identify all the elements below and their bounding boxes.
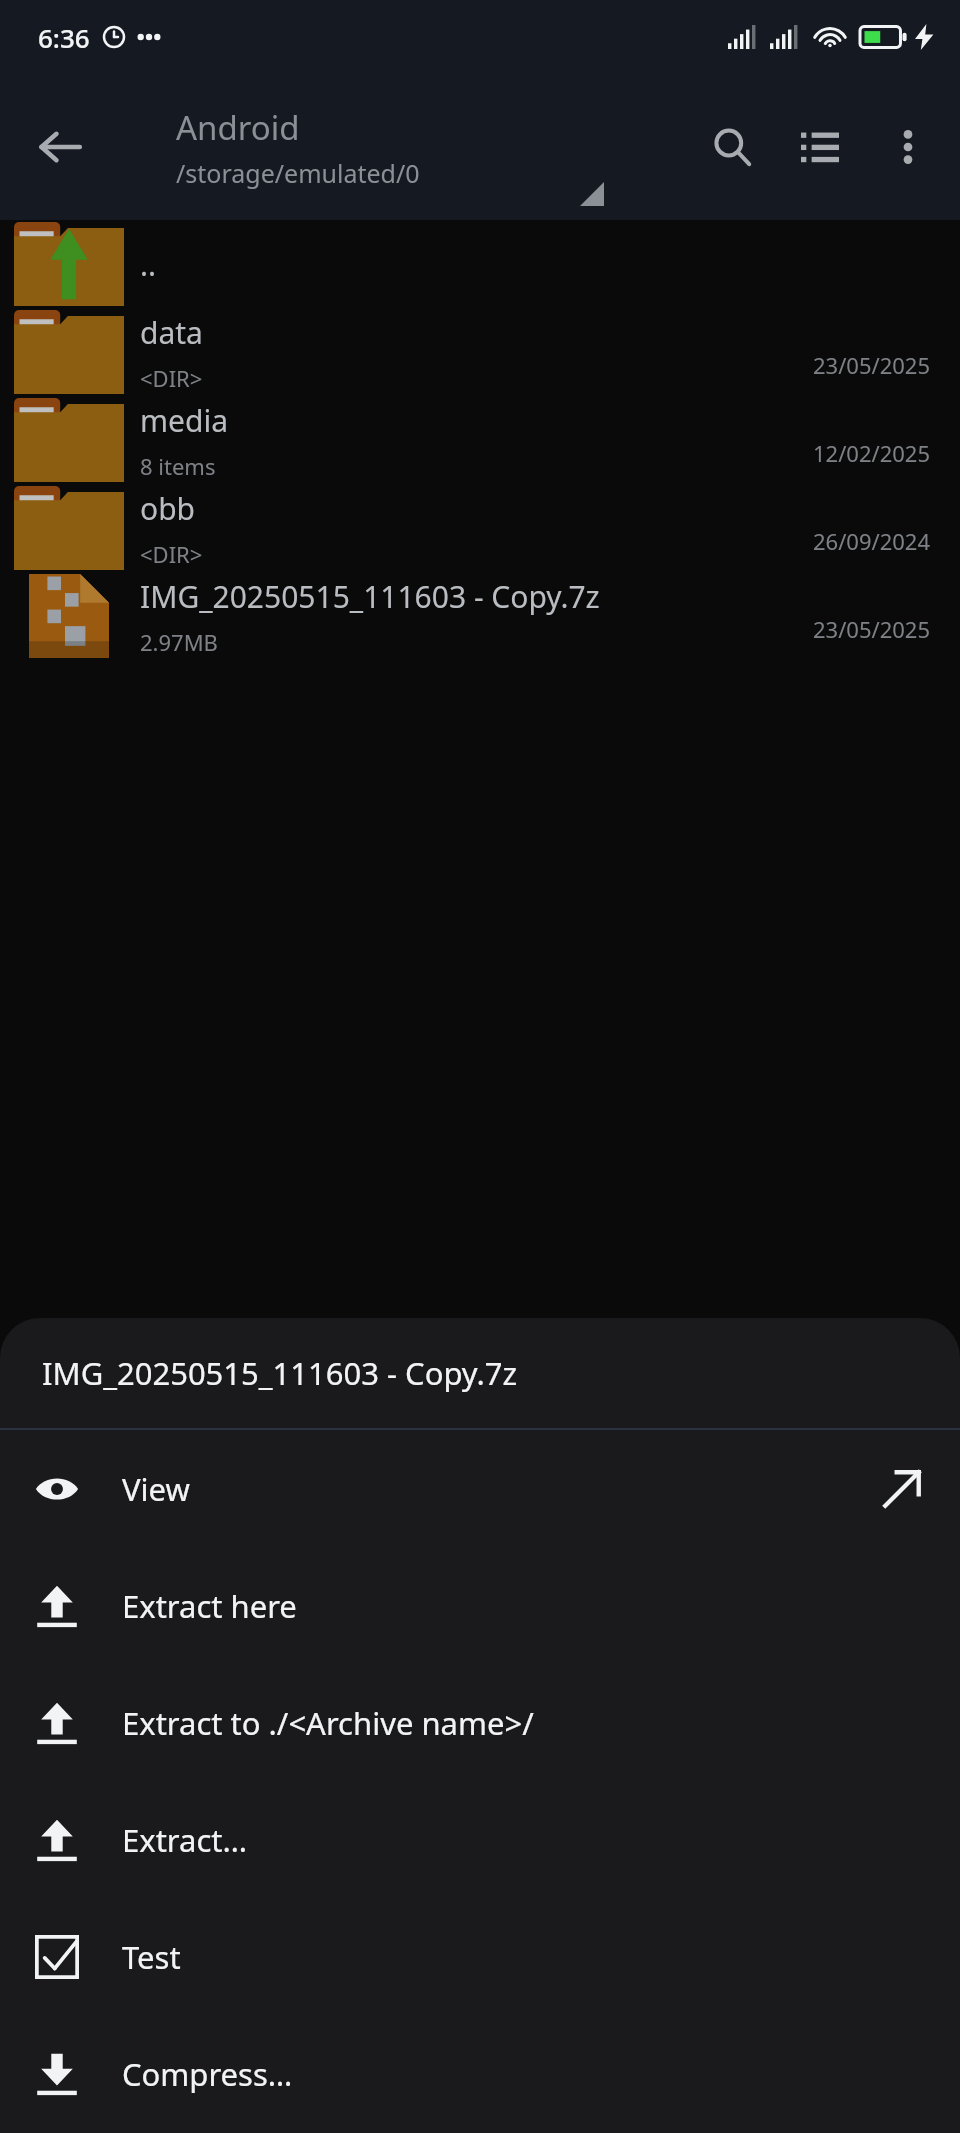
button[interactable]: media <box>0 396 960 484</box>
button[interactable]: Extract here <box>0 1547 960 1664</box>
staticText: obb <box>140 488 196 529</box>
staticText: <DIR> <box>140 539 203 569</box>
staticText: Extract… <box>122 1819 247 1861</box>
staticText: 23/05/2025 <box>812 614 930 644</box>
staticText: Extract here <box>122 1585 297 1627</box>
button[interactable]: Compress… <box>0 2015 960 2132</box>
button[interactable]: Back <box>16 103 104 191</box>
staticText: Android <box>176 105 300 150</box>
staticText: Compress… <box>122 2053 293 2095</box>
button[interactable]: View <box>0 1430 960 1547</box>
staticText: 12/02/2025 <box>812 438 930 468</box>
staticText: 2.97MB <box>140 627 218 657</box>
staticText: 8 items <box>140 451 216 481</box>
staticText: media <box>140 400 228 441</box>
staticText: 23/05/2025 <box>812 350 930 380</box>
staticText: .. <box>140 244 157 285</box>
button[interactable]: Extract to ./<Archive name>/ <box>0 1664 960 1781</box>
staticText: <DIR> <box>140 363 203 393</box>
button[interactable]: Search <box>688 103 776 191</box>
button[interactable]: .. <box>0 220 960 308</box>
button[interactable]: IMG_20250515_111603 - Copy.7z <box>0 572 960 660</box>
staticText: Extract to ./<Archive name>/ <box>122 1702 534 1744</box>
staticText: IMG_20250515_111603 - Copy.7z <box>140 576 600 617</box>
staticText: Test <box>122 1936 181 1978</box>
button[interactable]: View mode <box>776 103 864 191</box>
button[interactable]: More options <box>864 103 952 191</box>
button[interactable]: Test <box>0 1898 960 2015</box>
staticText: /storage/emulated/0 <box>176 156 420 190</box>
staticText: View <box>122 1468 190 1510</box>
staticText: 26/09/2024 <box>812 526 930 556</box>
button[interactable]: Extract… <box>0 1781 960 1898</box>
staticText: IMG_20250515_111603 - Copy.7z <box>42 1352 518 1394</box>
button[interactable]: data <box>0 308 960 396</box>
staticText: data <box>140 312 203 353</box>
button[interactable]: obb <box>0 484 960 572</box>
staticText: 6:36 <box>38 20 90 55</box>
